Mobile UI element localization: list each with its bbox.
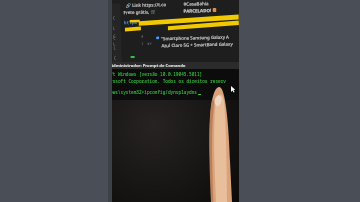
staticText: 🔗 Link https://t.co — [125, 1, 166, 8]
staticText: C — [113, 33, 116, 38]
staticText: Administrador: Prompt de Comando — [108, 63, 186, 69]
staticText: 4 — [141, 34, 144, 39]
staticText: ft Windows [versão 10.0.19045.5011] — [110, 71, 203, 77]
staticText: L — [113, 25, 116, 30]
staticText: C — [114, 55, 117, 60]
staticText: "Smartphone Samsung Galaxy A — [161, 34, 229, 41]
staticText: av — [147, 40, 152, 46]
other: Finger touching screen — [108, 0, 239, 202]
staticText: C — [113, 15, 116, 20]
staticText: Frete grátis, 🛒 — [123, 8, 157, 15]
staticText: L — [113, 45, 116, 50]
staticText: #CasaBahia — [183, 0, 209, 7]
staticText: PARCELADO! — [183, 7, 211, 14]
staticText: C — [113, 35, 116, 40]
staticText: https — [124, 19, 138, 25]
staticText: Azul Claro 5G + SmartBand Galaxy — [161, 40, 233, 48]
staticText: rosoft Corporation. Todos os direitos re… — [110, 78, 226, 84]
button[interactable]: Video player — [108, 0, 239, 202]
staticText: ows\system32>ipconfig/dynsplaydns — [110, 89, 197, 95]
staticText: } — [141, 41, 144, 46]
staticText: L — [113, 41, 116, 46]
